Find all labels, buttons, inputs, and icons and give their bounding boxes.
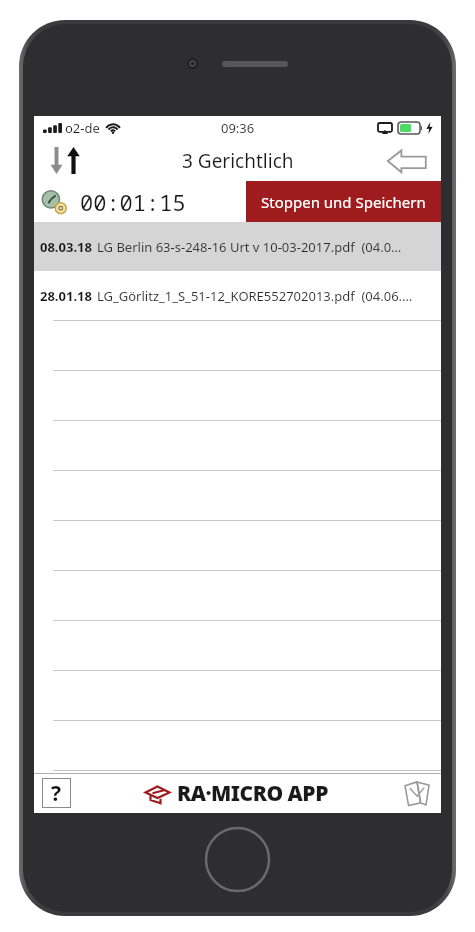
staticText: ? — [51, 779, 62, 808]
button[interactable]: Back — [381, 143, 433, 179]
staticText: 3 Gerichtlich — [182, 148, 294, 174]
button[interactable]: Sort ascending descending — [44, 143, 86, 178]
button[interactable]: Documents — [401, 777, 433, 809]
staticText: Stoppen und Speichern — [261, 192, 426, 212]
button[interactable]: Help — [42, 778, 71, 808]
staticText: LG Berlin 63-s-248-16 Urt v 10-03-2017.p… — [97, 238, 402, 256]
staticText: LG_Görlitz_1_S_51-12_KORE552702013.pdf (… — [97, 287, 413, 305]
button[interactable]: RA·MICRO APP — [145, 779, 328, 808]
button[interactable]: 08.03.18 — [34, 222, 441, 271]
staticText: o2-de — [65, 119, 100, 137]
button[interactable]: 28.01.18 — [34, 271, 441, 320]
staticText: 09:36 — [221, 119, 255, 137]
button[interactable]: Stoppen und Speichern — [246, 181, 441, 222]
button[interactable]: 00:01:15 — [34, 181, 246, 222]
staticText: 00:01:15 — [80, 187, 186, 217]
staticText: 28.01.18 — [40, 287, 92, 305]
staticText: RA·MICRO APP — [177, 779, 328, 808]
staticText: 08.03.18 — [40, 238, 92, 256]
